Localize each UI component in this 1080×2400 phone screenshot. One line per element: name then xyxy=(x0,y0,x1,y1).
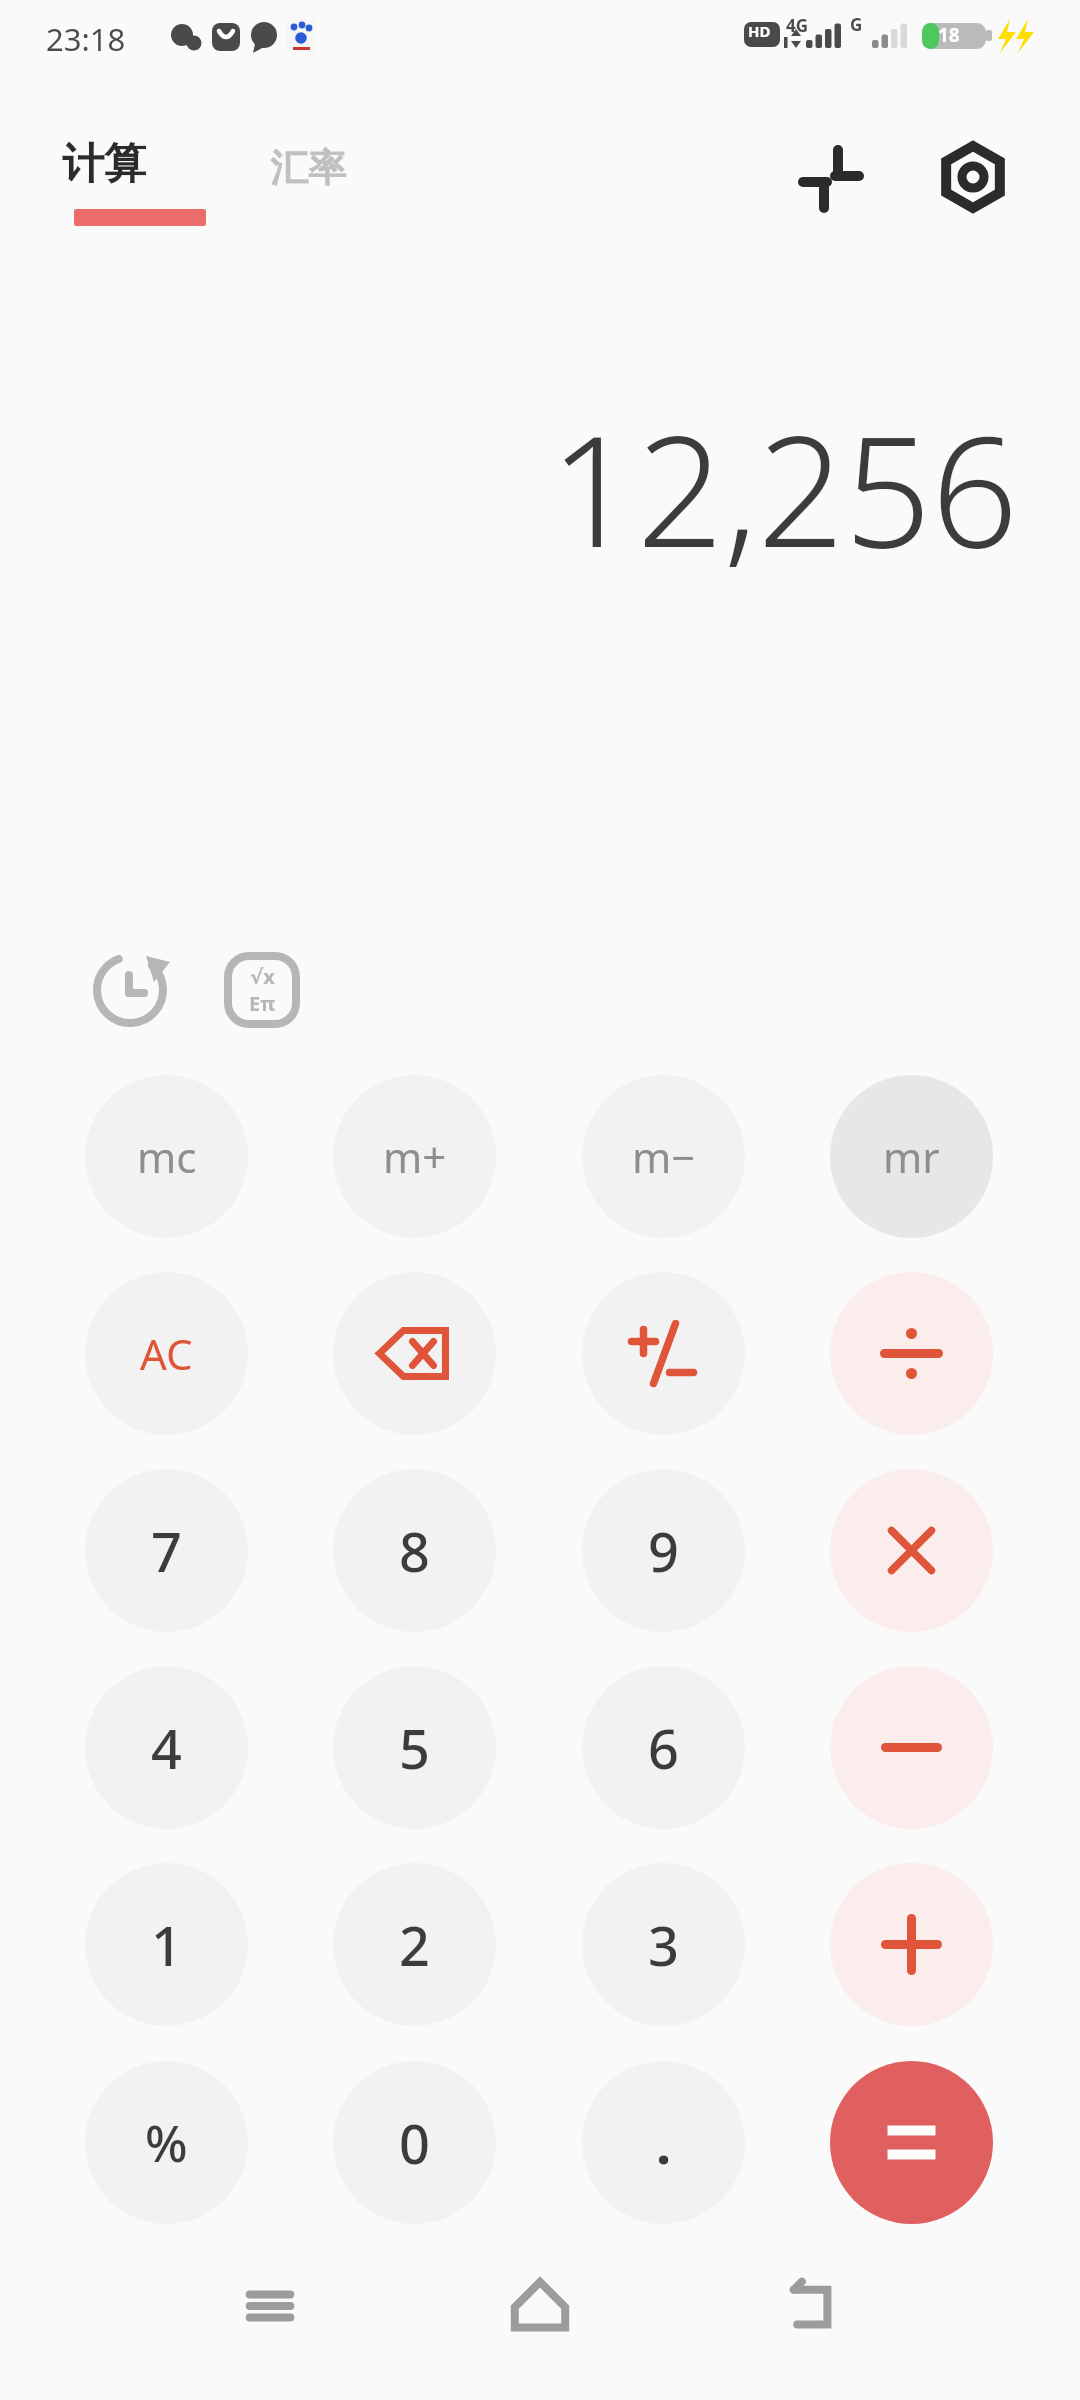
button[interactable]: Backspace xyxy=(333,1272,496,1435)
staticText: m+ xyxy=(383,1128,447,1185)
button[interactable]: 5 xyxy=(333,1666,496,1829)
button[interactable]: Scientific mode xyxy=(212,940,312,1040)
staticText: 8 xyxy=(399,1514,430,1588)
button[interactable]: 4 xyxy=(85,1666,248,1829)
button[interactable]: Equals xyxy=(830,2061,993,2224)
staticText: % xyxy=(145,2109,188,2177)
staticText: √x xyxy=(250,963,275,990)
button[interactable]: Recents xyxy=(220,2256,320,2356)
button[interactable]: m− xyxy=(582,1075,745,1238)
staticText: m− xyxy=(632,1128,696,1185)
staticText: 9 xyxy=(648,1514,679,1588)
staticText: 3 xyxy=(648,1908,679,1982)
staticText: 2 xyxy=(399,1908,430,1982)
button[interactable]: History xyxy=(80,940,180,1040)
staticText: . xyxy=(656,2106,672,2180)
staticText: AC xyxy=(140,1325,193,1382)
button[interactable]: 9 xyxy=(582,1469,745,1632)
staticText: 5 xyxy=(399,1711,430,1785)
button[interactable]: Back xyxy=(760,2256,860,2356)
button[interactable]: 0 xyxy=(333,2061,496,2224)
button[interactable]: % xyxy=(85,2061,248,2224)
staticText: 6 xyxy=(648,1711,679,1785)
button[interactable]: mc xyxy=(85,1075,248,1238)
button[interactable]: Home xyxy=(490,2256,590,2356)
button[interactable]: Settings xyxy=(928,132,1018,222)
staticText: 计算 xyxy=(62,138,146,191)
staticText: 1 xyxy=(151,1908,182,1982)
staticText: 18 xyxy=(938,22,960,48)
button[interactable]: Expand xyxy=(786,132,876,222)
staticText: mc xyxy=(137,1128,197,1185)
button[interactable]: Add xyxy=(830,1863,993,2026)
button[interactable]: 8 xyxy=(333,1469,496,1632)
staticText: 4 xyxy=(151,1711,182,1785)
button[interactable]: m+ xyxy=(333,1075,496,1238)
button[interactable]: 汇率 xyxy=(262,138,354,198)
button[interactable]: . xyxy=(582,2061,745,2224)
button[interactable]: 计算 xyxy=(54,132,154,197)
button[interactable]: mr xyxy=(830,1075,993,1238)
button[interactable]: Multiply xyxy=(830,1469,993,1632)
button[interactable]: Toggle sign xyxy=(582,1272,745,1435)
staticText: 23:18 xyxy=(46,18,126,60)
staticText: HD xyxy=(748,21,771,41)
button[interactable]: 1 xyxy=(85,1863,248,2026)
button[interactable]: 7 xyxy=(85,1469,248,1632)
button[interactable]: 3 xyxy=(582,1863,745,2026)
button[interactable]: 2 xyxy=(333,1863,496,2026)
staticText: 7 xyxy=(151,1514,182,1588)
staticText: 汇率 xyxy=(270,144,346,192)
staticText: mr xyxy=(883,1128,940,1185)
staticText: 4G xyxy=(786,14,809,37)
button[interactable]: AC xyxy=(85,1272,248,1435)
button[interactable]: Subtract xyxy=(830,1666,993,1829)
button[interactable]: Divide xyxy=(830,1272,993,1435)
staticText: 0 xyxy=(399,2106,430,2180)
staticText: G xyxy=(850,13,863,36)
staticText: Eπ xyxy=(249,990,276,1017)
staticText: 12,256 xyxy=(549,385,1018,592)
button[interactable]: 6 xyxy=(582,1666,745,1829)
